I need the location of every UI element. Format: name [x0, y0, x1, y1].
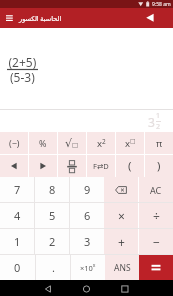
- staticText: 9: [84, 182, 91, 197]
- staticText: x□: [125, 137, 136, 150]
- button[interactable]: 6: [70, 203, 104, 228]
- button[interactable]: [36, 280, 60, 296]
- staticText: 1: [156, 111, 161, 121]
- staticText: ÷: [153, 208, 160, 224]
- button[interactable]: √□: [58, 132, 86, 154]
- button[interactable]: %: [29, 132, 57, 154]
- staticText: %: [39, 137, 47, 149]
- staticText: √□: [65, 137, 79, 150]
- staticText: ): [157, 158, 161, 174]
- staticText: ×: [118, 208, 125, 224]
- staticText: (−): [9, 137, 20, 149]
- button[interactable]: x□: [116, 132, 144, 154]
- staticText: π: [156, 137, 163, 150]
- staticText: 7: [14, 182, 21, 197]
- staticText: 0: [14, 260, 21, 275]
- button[interactable]: .: [36, 255, 70, 280]
- button[interactable]: −: [139, 229, 173, 254]
- staticText: +: [118, 234, 125, 250]
- button[interactable]: 1: [0, 229, 34, 254]
- button[interactable]: [75, 280, 99, 296]
- staticText: ANS: [114, 262, 131, 274]
- staticText: 2: [156, 122, 161, 132]
- button[interactable]: [0, 155, 28, 177]
- staticText: ×10x: [80, 262, 96, 273]
- staticText: 3: [148, 114, 155, 130]
- button[interactable]: 9: [70, 177, 104, 202]
- button[interactable]: ÷: [139, 203, 173, 228]
- button[interactable]: 4: [0, 203, 34, 228]
- button[interactable]: [58, 155, 86, 177]
- button[interactable]: π: [145, 132, 173, 154]
- button[interactable]: [0, 8, 20, 28]
- button[interactable]: ×10x: [71, 255, 105, 280]
- button[interactable]: AC: [139, 177, 173, 202]
- button[interactable]: ): [145, 155, 173, 177]
- staticText: 1: [14, 234, 21, 249]
- button[interactable]: (: [116, 155, 144, 177]
- staticText: (: [128, 158, 132, 174]
- button[interactable]: [139, 255, 173, 280]
- button[interactable]: +: [104, 229, 138, 254]
- staticText: 6: [84, 208, 91, 223]
- button[interactable]: 5: [35, 203, 69, 228]
- button[interactable]: 0: [0, 255, 35, 280]
- button[interactable]: [29, 155, 57, 177]
- button[interactable]: (−): [0, 132, 28, 154]
- button[interactable]: ×: [104, 203, 138, 228]
- button[interactable]: 7: [0, 177, 34, 202]
- staticText: AC: [150, 184, 162, 196]
- button[interactable]: 8: [35, 177, 69, 202]
- staticText: .: [52, 260, 55, 275]
- staticText: 4: [14, 208, 21, 223]
- button[interactable]: x2: [87, 132, 115, 154]
- button[interactable]: F⇄D: [87, 155, 115, 177]
- staticText: 2: [49, 234, 56, 249]
- button[interactable]: [114, 280, 138, 296]
- staticText: 5: [49, 208, 56, 223]
- staticText: x2: [97, 137, 106, 150]
- button[interactable]: 3: [70, 229, 104, 254]
- staticText: −: [153, 234, 160, 250]
- button[interactable]: ANS: [105, 255, 139, 280]
- button[interactable]: [104, 177, 138, 202]
- staticText: 3: [84, 234, 91, 249]
- staticText: 8: [49, 182, 56, 197]
- staticText: F⇄D: [93, 161, 109, 171]
- button[interactable]: 2: [35, 229, 69, 254]
